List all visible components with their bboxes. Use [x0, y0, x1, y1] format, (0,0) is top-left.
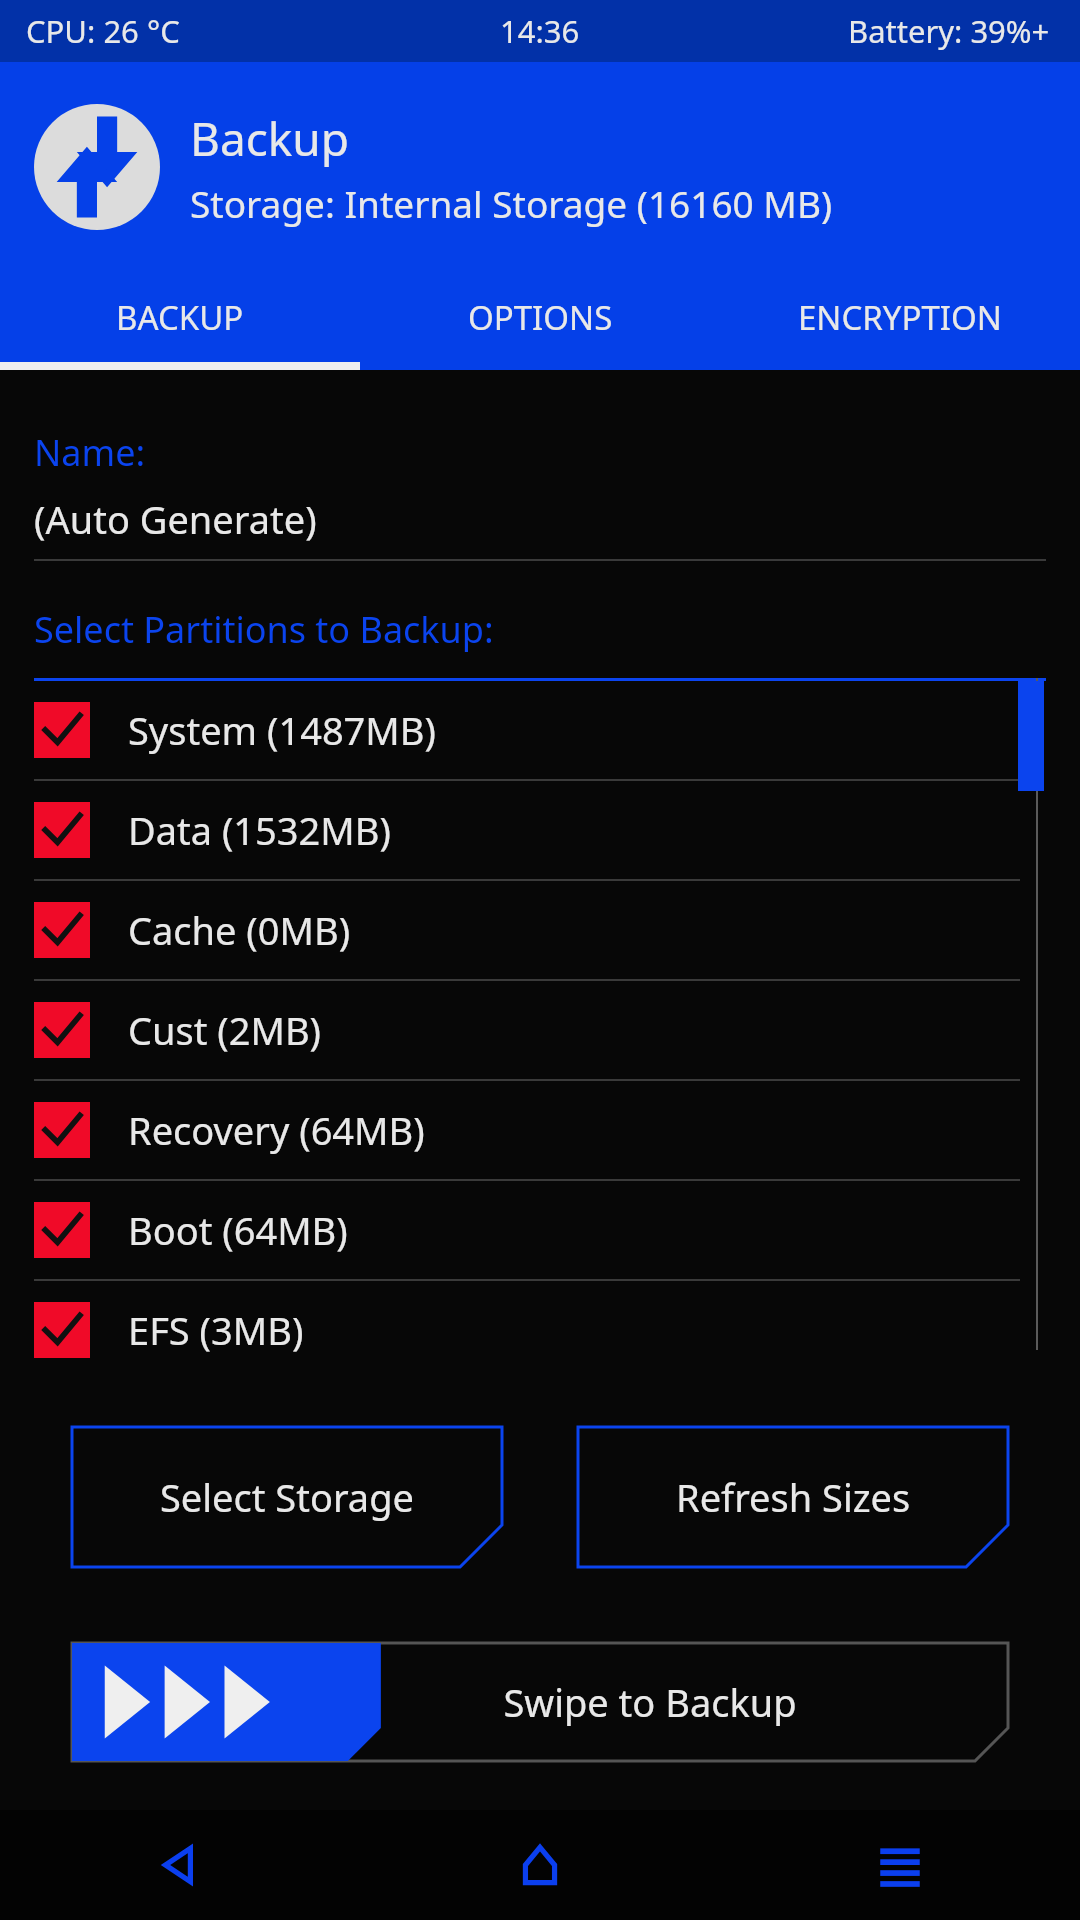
button[interactable]: Refresh Sizes: [578, 1427, 1008, 1567]
button[interactable]: Data (1532MB): [0, 781, 1080, 879]
staticText: Cust (2MB): [128, 1004, 322, 1056]
button[interactable]: EFS (3MB): [0, 1281, 1080, 1379]
staticText: EFS (3MB): [128, 1304, 304, 1356]
staticText: Select Storage: [160, 1471, 414, 1523]
button[interactable]: System (1487MB): [0, 681, 1080, 779]
staticText: OPTIONS: [468, 295, 613, 340]
button[interactable]: Select Storage: [72, 1427, 502, 1567]
staticText: (Auto Generate): [34, 493, 317, 545]
staticText: CPU: 26 °C: [26, 10, 180, 52]
staticText: Storage: Internal Storage (16160 MB): [190, 178, 833, 228]
button[interactable]: ENCRYPTION: [720, 272, 1080, 362]
staticText: Swipe to Backup: [503, 1676, 797, 1728]
button[interactable]: Menu: [720, 1810, 1080, 1920]
button[interactable]: BACKUP: [0, 272, 360, 362]
button[interactable]: Cust (2MB): [0, 981, 1080, 1079]
staticText: Boot (64MB): [128, 1204, 348, 1256]
staticText: Battery: 39%+: [848, 10, 1050, 52]
button[interactable]: Home: [360, 1810, 720, 1920]
staticText: Name:: [34, 428, 146, 477]
button[interactable]: Swipe to Backup: [72, 1643, 1008, 1761]
button[interactable]: Cache (0MB): [0, 881, 1080, 979]
staticText: BACKUP: [116, 295, 244, 340]
staticText: Data (1532MB): [128, 804, 391, 856]
button[interactable]: Back: [0, 1810, 360, 1920]
button[interactable]: OPTIONS: [360, 272, 720, 362]
staticText: Backup: [190, 107, 350, 170]
staticText: ENCRYPTION: [798, 295, 1002, 340]
staticText: 14:36: [500, 10, 580, 52]
staticText: Refresh Sizes: [676, 1471, 911, 1523]
staticText: Select Partitions to Backup:: [34, 605, 494, 654]
staticText: Recovery (64MB): [128, 1104, 425, 1156]
staticText: Cache (0MB): [128, 904, 351, 956]
button[interactable]: Recovery (64MB): [0, 1081, 1080, 1179]
button[interactable]: Boot (64MB): [0, 1181, 1080, 1279]
staticText: System (1487MB): [128, 704, 436, 756]
